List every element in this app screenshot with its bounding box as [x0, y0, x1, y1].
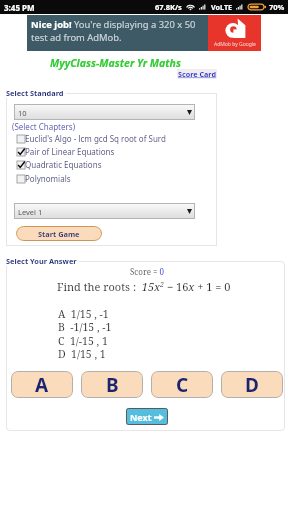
- staticText: Quadratic Equations: [25, 159, 102, 170]
- button[interactable]: Euclid's Algo - lcm gcd Sq root of Surd: [17, 133, 166, 144]
- staticText: Next: [130, 411, 152, 423]
- button[interactable]: B: [81, 371, 143, 398]
- staticText: AdMob by Google: [214, 41, 256, 48]
- button[interactable]: Start Game: [16, 226, 102, 241]
- staticText: C 1/-15 , 1: [58, 334, 108, 348]
- button[interactable]: Polynomials: [17, 173, 71, 184]
- staticText: Select Your Answer: [6, 256, 77, 266]
- button[interactable]: D: [221, 371, 283, 398]
- staticText: A 1/15 , -1: [58, 307, 109, 321]
- staticText: D: [245, 372, 259, 398]
- staticText: 3:45 PM: [4, 2, 35, 13]
- staticText: Select Standard: [6, 88, 64, 98]
- staticText: 67.8K/s: [155, 2, 182, 12]
- staticText: Euclid's Algo - lcm gcd Sq root of Surd: [25, 133, 166, 144]
- staticText: 70%: [269, 2, 285, 12]
- staticText: A: [35, 372, 49, 398]
- staticText: (Select Chapters): [12, 121, 76, 132]
- staticText: Find the roots : 15x2 − 16x + 1 = 0: [57, 279, 231, 294]
- button[interactable]: Level 1: [14, 203, 195, 219]
- button[interactable]: C: [151, 371, 213, 398]
- staticText: C: [176, 372, 189, 398]
- staticText: Score Card: [178, 69, 216, 79]
- staticText: Start Game: [38, 229, 80, 239]
- staticText: Level 1: [18, 207, 43, 217]
- staticText: MyyClass-Master Yr Maths: [50, 56, 181, 70]
- button[interactable]: A: [11, 371, 73, 398]
- staticText: Pair of Linear Equations: [25, 146, 115, 157]
- button[interactable]: Quadratic Equations: [17, 159, 102, 170]
- staticText: test ad from AdMob.: [31, 31, 122, 44]
- button[interactable]: Pair of Linear Equations: [17, 146, 115, 157]
- button[interactable]: Score Card: [177, 69, 217, 79]
- button[interactable]: Next: [126, 408, 168, 425]
- staticText: B: [106, 372, 119, 398]
- staticText: VoLTE: [211, 2, 233, 12]
- staticText: D 1/15 , 1: [58, 347, 106, 361]
- staticText: Polynomials: [25, 173, 71, 184]
- staticText: B -1/15 , -1: [58, 320, 112, 334]
- button[interactable]: 10: [14, 104, 195, 120]
- staticText: Score = 0: [130, 266, 165, 277]
- button[interactable]: Nice job! You're displaying a 320 x 50: [27, 15, 261, 51]
- staticText: Nice job! You're displaying a 320 x 50: [31, 18, 196, 31]
- staticText: 10: [18, 108, 27, 118]
